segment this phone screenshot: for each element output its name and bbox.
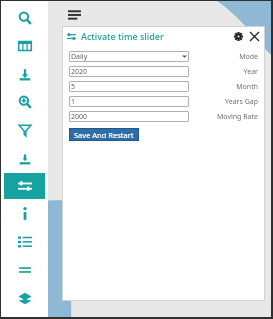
staticText: 1 [71, 97, 76, 107]
staticText: 2020 [71, 67, 88, 77]
button[interactable]: Legend [4, 229, 45, 255]
button[interactable]: Close [247, 29, 261, 43]
button[interactable]: Info [4, 201, 45, 227]
staticText: Moving Rate [216, 112, 258, 122]
button[interactable]: Settings [231, 29, 245, 43]
staticText: 5 [71, 82, 76, 92]
staticText: 2000 [71, 112, 88, 122]
button[interactable]: Save And Restart [69, 128, 139, 141]
staticText: Mode [239, 52, 258, 62]
button[interactable]: Time slider [4, 173, 45, 199]
button[interactable]: 2000 [69, 111, 189, 122]
staticText: Year [243, 67, 258, 77]
button[interactable]: 2020 [69, 66, 189, 77]
button[interactable]: Menu [65, 6, 83, 24]
staticText: Activate time slider [81, 30, 164, 42]
staticText: Years Gap [225, 97, 258, 107]
button[interactable]: Filter [4, 117, 45, 143]
button[interactable]: Measure [4, 257, 45, 283]
button[interactable]: Import [4, 145, 45, 171]
button[interactable]: Basemap [4, 33, 45, 59]
staticText: Month [236, 82, 258, 92]
button[interactable]: 1 [69, 96, 189, 107]
button[interactable]: Search [4, 5, 45, 31]
button[interactable]: Layers [4, 285, 45, 311]
staticText: Daily [71, 52, 88, 62]
staticText: Save And Restart [74, 130, 134, 140]
button[interactable]: Daily [69, 51, 189, 62]
button[interactable]: 5 [69, 81, 189, 92]
button[interactable]: Download [4, 61, 45, 87]
button[interactable]: Zoom to [4, 89, 45, 115]
